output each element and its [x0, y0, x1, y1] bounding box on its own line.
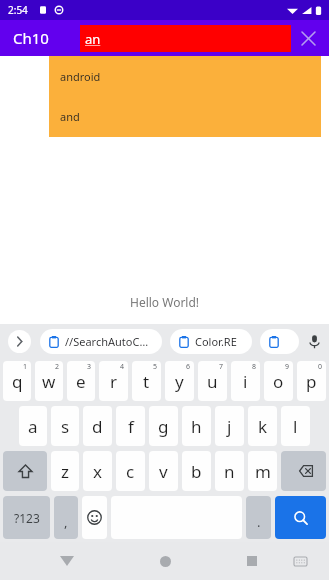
staticText: an [85, 30, 101, 48]
staticText: 6 [186, 362, 191, 372]
button[interactable]: . [246, 496, 271, 539]
staticText: and [60, 109, 80, 124]
staticText: Color.RED [195, 334, 244, 349]
staticText: y [175, 370, 184, 393]
staticText: 4 [120, 362, 125, 372]
staticText: Ch10 [13, 28, 49, 48]
staticText: 7 [219, 362, 224, 372]
staticText: o [273, 370, 284, 393]
button[interactable]: Close search [293, 23, 323, 53]
button[interactable]: Switch keyboard [287, 548, 313, 574]
staticText: u [207, 370, 218, 393]
button[interactable]: t [132, 361, 161, 401]
staticText: w [42, 370, 56, 393]
staticText: 5 [153, 362, 158, 372]
button[interactable]: c [116, 451, 145, 491]
button[interactable]: l [281, 406, 310, 446]
button[interactable]: r [99, 361, 128, 401]
staticText: b [191, 460, 202, 483]
staticText: p [306, 370, 317, 393]
staticText: h [191, 415, 202, 438]
staticText: j [227, 415, 232, 438]
button[interactable]: n [215, 451, 244, 491]
button[interactable]: Recents [237, 546, 267, 576]
staticText: Hello World! [130, 294, 200, 310]
button[interactable]: ?123 [3, 496, 50, 539]
staticText: e [76, 370, 86, 393]
staticText: g [158, 415, 169, 438]
button[interactable]: Shift [3, 451, 47, 491]
button[interactable]: y [165, 361, 194, 401]
button[interactable]: k [248, 406, 277, 446]
button[interactable] [260, 329, 299, 354]
button[interactable]: //SearchAutoC… [40, 329, 162, 354]
staticText: 8 [252, 362, 257, 372]
staticText: 1 [23, 362, 28, 372]
button[interactable]: Back [52, 546, 82, 576]
staticText: d [92, 415, 103, 438]
button[interactable]: z [51, 451, 79, 491]
staticText: //SearchAutoC… [65, 334, 149, 349]
staticText: i [243, 370, 248, 393]
button[interactable]: g [149, 406, 178, 446]
staticText: k [258, 415, 268, 438]
button[interactable]: f [116, 406, 145, 446]
button[interactable]: o [264, 361, 293, 401]
button[interactable]: Search [275, 496, 326, 539]
button[interactable]: h [182, 406, 211, 446]
staticText: m [255, 460, 271, 483]
button[interactable]: u [198, 361, 227, 401]
staticText: n [224, 460, 235, 483]
button[interactable]: v [149, 451, 178, 491]
staticText: f [128, 415, 134, 438]
button[interactable]: b [182, 451, 211, 491]
staticText: 3 [87, 362, 92, 372]
button[interactable]: Home [150, 546, 180, 576]
staticText: ?123 [14, 510, 40, 526]
button[interactable]: and [49, 96, 321, 136]
staticText: v [159, 460, 168, 483]
button[interactable]: d [83, 406, 112, 446]
button[interactable]: x [83, 451, 112, 491]
button[interactable]: j [215, 406, 244, 446]
button[interactable]: , [54, 496, 78, 539]
staticText: t [143, 370, 150, 393]
button[interactable]: w [35, 361, 63, 401]
button[interactable]: Voice input [299, 324, 329, 358]
button[interactable]: p [297, 361, 326, 401]
staticText: s [61, 415, 70, 438]
staticText: c [126, 460, 135, 483]
button[interactable]: i [231, 361, 260, 401]
staticText: 0 [318, 362, 323, 372]
staticText: a [28, 415, 38, 438]
staticText: 9 [285, 362, 290, 372]
button[interactable]: Color.RED [170, 329, 252, 354]
button[interactable]: e [67, 361, 95, 401]
button[interactable]: a [19, 406, 47, 446]
staticText: r [110, 370, 118, 393]
staticText: q [12, 370, 23, 393]
button[interactable]: android [49, 56, 321, 96]
staticText: 2 [55, 362, 60, 372]
staticText: l [293, 415, 298, 438]
staticText: android [60, 69, 101, 84]
staticText: 2:54 [8, 3, 28, 17]
staticText: . [257, 513, 261, 531]
button[interactable]: Backspace [281, 451, 326, 491]
button[interactable]: an [80, 25, 291, 52]
staticText: z [61, 460, 69, 483]
staticText: x [93, 460, 102, 483]
button[interactable]: s [51, 406, 79, 446]
button[interactable]: m [248, 451, 277, 491]
button[interactable]: q [3, 361, 31, 401]
staticText: , [64, 513, 68, 531]
button[interactable]: Expand suggestions [8, 330, 31, 353]
button[interactable]: Emoji [82, 496, 107, 539]
